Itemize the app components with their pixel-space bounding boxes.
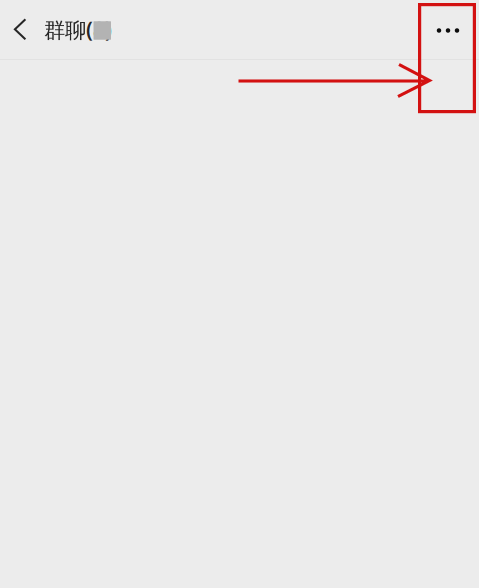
button[interactable]: Back <box>0 0 44 59</box>
staticText: 群聊(8) <box>44 15 112 44</box>
button[interactable]: More options <box>417 0 479 59</box>
